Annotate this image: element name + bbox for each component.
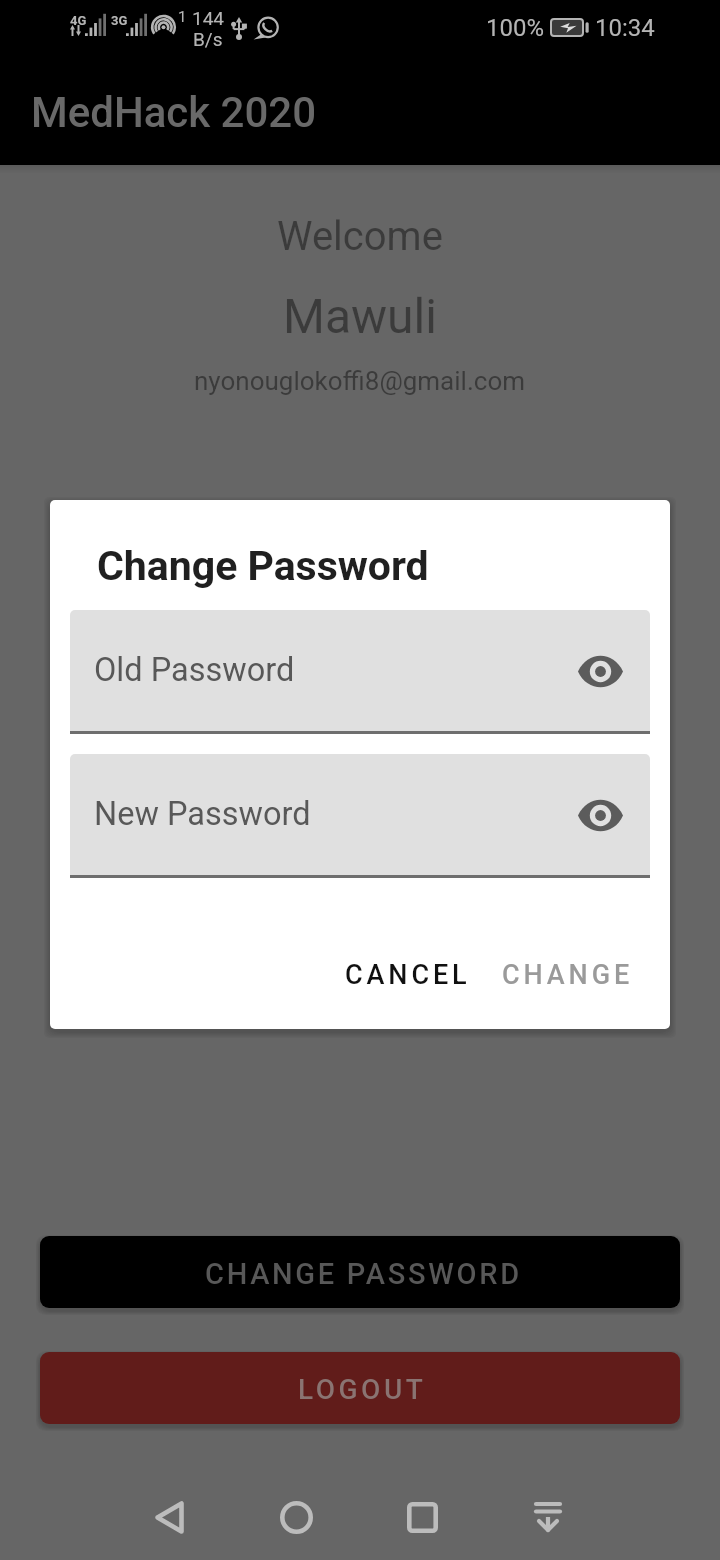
button[interactable]: Back <box>139 1487 199 1547</box>
staticText: LOGOUT <box>298 1373 427 1406</box>
button[interactable]: LOGOUT <box>40 1352 680 1424</box>
button[interactable]: Recent apps <box>392 1487 452 1547</box>
staticText: 3G <box>111 13 128 28</box>
button[interactable]: New Password <box>70 754 650 875</box>
staticText: 1 <box>178 8 187 26</box>
button[interactable]: Old Password <box>70 610 650 731</box>
staticText: 144 <box>192 7 225 29</box>
staticText: CHANGE <box>502 959 634 991</box>
staticText: 10:34 <box>595 14 655 42</box>
staticText: Old Password <box>94 651 295 689</box>
staticText: CHANGE PASSWORD <box>205 1257 522 1291</box>
staticText: 4G <box>70 13 87 28</box>
button[interactable]: CANCEL <box>335 947 481 1003</box>
staticText: New Password <box>94 795 311 833</box>
button[interactable]: CHANGE <box>492 947 644 1003</box>
button[interactable]: Home <box>266 1487 326 1547</box>
button[interactable]: CHANGE PASSWORD <box>40 1236 680 1308</box>
staticText: Change Password <box>97 542 429 590</box>
staticText: B/s <box>193 28 223 50</box>
staticText: Welcome <box>277 213 443 260</box>
staticText: 100% <box>486 14 545 42</box>
staticText: nyonouglokoffi8@gmail.com <box>194 366 526 396</box>
button[interactable]: Hide navigation bar <box>518 1487 578 1547</box>
button[interactable]: Show password <box>575 790 625 840</box>
button[interactable]: Show password <box>575 646 625 696</box>
staticText: Mawuli <box>283 288 437 344</box>
staticText: CANCEL <box>345 959 471 991</box>
staticText: MedHack 2020 <box>31 88 317 137</box>
